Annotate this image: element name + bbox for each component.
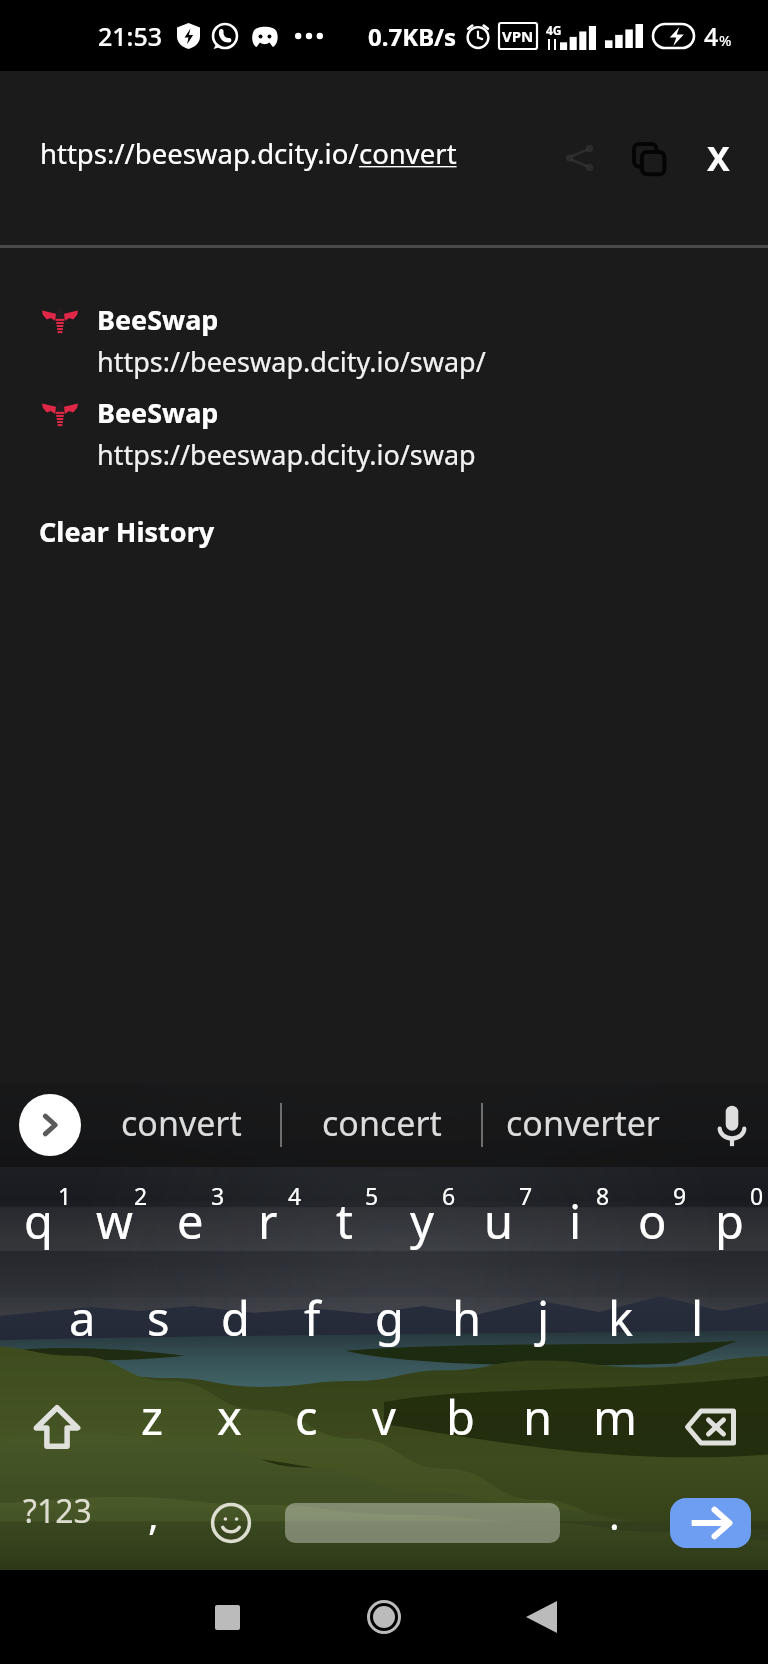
staticText: g [375,1286,404,1350]
button[interactable]: Space [285,1503,560,1543]
staticText: https://beeswap.dcity.io/swap/ [97,343,486,380]
staticText: 2 [134,1180,148,1211]
button[interactable]: 0 [691,1179,768,1278]
staticText: 4 [288,1180,302,1211]
staticText: 8 [596,1180,610,1211]
staticText: n [523,1385,553,1449]
button[interactable]: Backspace [653,1377,768,1476]
staticText: z [141,1385,164,1449]
staticText: https://beeswap.dcity.io/swap [97,436,476,473]
staticText: VPN [502,26,534,46]
staticText: BeeSwap [97,394,219,431]
button[interactable]: concert [282,1083,481,1167]
button[interactable]: Emoji [192,1476,269,1570]
staticText: https://beeswap.dcity.io/ [40,135,359,172]
staticText: X [707,135,730,181]
button[interactable]: c [268,1377,345,1476]
button[interactable]: 1 [0,1179,76,1278]
staticText: e [177,1189,204,1253]
staticText: 0 [750,1180,764,1211]
staticText: Clear History [39,513,215,550]
button[interactable]: a [44,1278,120,1377]
staticText: 5 [365,1180,379,1211]
staticText: 21:53 [98,19,163,53]
staticText: ?123 [23,1489,92,1533]
button[interactable]: convert [82,1083,280,1167]
staticText: o [638,1189,667,1253]
staticText: 4G [546,22,562,38]
staticText: BeeSwap [97,301,219,338]
staticText: . [609,1487,620,1541]
button[interactable]: Close [690,130,746,186]
button[interactable]: n [499,1377,576,1476]
button[interactable]: , [115,1476,192,1570]
button[interactable]: b [422,1377,499,1476]
button[interactable]: z [114,1377,191,1476]
button[interactable]: Expand suggestions [19,1094,81,1156]
button[interactable]: converter [483,1083,682,1167]
staticText: u [484,1189,514,1253]
button[interactable]: Home [348,1581,420,1653]
staticText: b [446,1385,475,1449]
staticText: x [217,1385,242,1449]
staticText: 3 [211,1180,225,1211]
button[interactable]: 6 [383,1179,460,1278]
staticText: v [372,1385,396,1449]
staticText: convert [121,1100,242,1146]
button[interactable]: 4 [229,1179,306,1278]
staticText: , [148,1487,159,1541]
button[interactable]: g [351,1278,428,1377]
staticText: r [258,1189,278,1253]
staticText: l [691,1286,704,1350]
button[interactable]: l [659,1278,736,1377]
staticText: s [147,1286,170,1350]
staticText: 9 [673,1180,687,1211]
staticText: 7 [519,1180,533,1211]
button[interactable]: Recents [191,1581,263,1653]
staticText: c [295,1385,318,1449]
button[interactable]: k [582,1278,659,1377]
staticText: converter [506,1100,660,1146]
button[interactable]: m [576,1377,653,1476]
button[interactable]: BeeSwap [0,394,768,473]
staticText: m [593,1385,637,1449]
button[interactable]: 5 [306,1179,383,1278]
staticText: p [715,1189,744,1253]
staticText: % [719,30,732,50]
button[interactable]: 8 [537,1179,614,1278]
button[interactable]: x [191,1377,268,1476]
staticText: d [221,1286,250,1350]
button[interactable]: 7 [460,1179,537,1278]
staticText: 6 [442,1180,456,1211]
button[interactable]: 9 [614,1179,691,1278]
staticText: a [69,1286,96,1350]
staticText: q [24,1189,53,1253]
button[interactable]: Shift [0,1377,114,1476]
staticText: 0.7KB/s [368,20,457,53]
button[interactable]: ?123 [0,1476,115,1570]
staticText: w [96,1189,133,1253]
staticText: 4 [704,19,719,53]
button[interactable]: 3 [152,1179,229,1278]
button[interactable]: Back [505,1581,577,1653]
staticText: k [608,1286,634,1350]
button[interactable]: Enter [670,1498,751,1548]
button[interactable]: j [505,1278,582,1377]
button[interactable]: . [576,1476,653,1570]
button[interactable]: d [197,1278,274,1377]
staticText: j [537,1286,550,1350]
button[interactable]: 2 [76,1179,152,1278]
button[interactable]: BeeSwap [0,301,768,380]
button[interactable]: Clear History [0,511,768,560]
staticText: concert [322,1100,442,1146]
staticText: i [569,1189,582,1253]
button[interactable]: s [120,1278,197,1377]
button[interactable]: Voice input [696,1083,768,1167]
staticText: f [304,1286,321,1350]
button[interactable]: Share [552,130,608,186]
button[interactable]: v [345,1377,422,1476]
staticText: 1 [58,1180,72,1211]
button[interactable]: Copy [620,130,676,186]
button[interactable]: h [428,1278,505,1377]
button[interactable]: f [274,1278,351,1377]
